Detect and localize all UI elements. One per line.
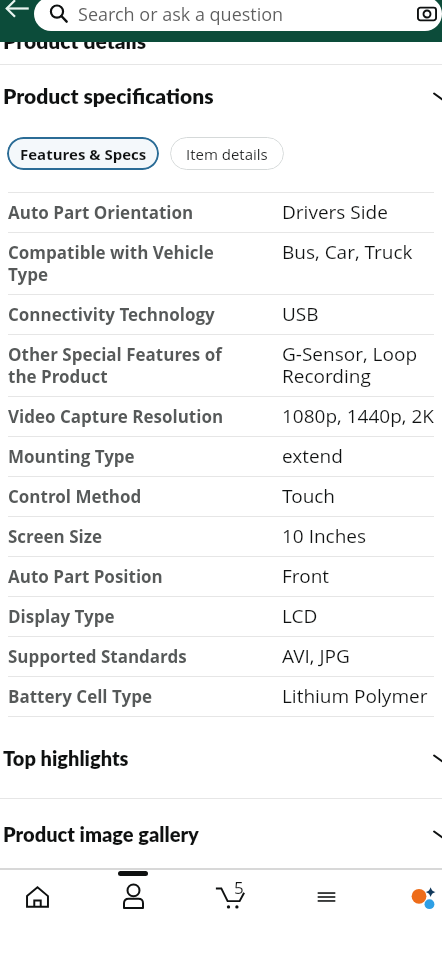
- staticText: Compatible with Vehicle Type: [8, 241, 238, 286]
- staticText: Bus, Car, Truck: [282, 239, 434, 265]
- staticText: Drivers Side: [282, 199, 434, 225]
- button[interactable]: Menu: [311, 870, 341, 960]
- button[interactable]: Rufus assistant: [407, 870, 437, 960]
- staticText: Battery Cell Type: [8, 685, 238, 708]
- staticText: Other Special Features of the Product: [8, 343, 238, 388]
- staticText: Screen Size: [8, 525, 238, 548]
- staticText: Search or ask a question: [78, 2, 284, 27]
- staticText: Product specifications: [3, 83, 214, 108]
- staticText: Lithium Polymer: [282, 683, 434, 709]
- button[interactable]: Product image gallery: [0, 799, 442, 868]
- staticText: Front: [282, 563, 434, 589]
- staticText: 5: [234, 876, 244, 899]
- staticText: 10 Inches: [282, 523, 434, 549]
- button[interactable]: Cart, 5 items: [215, 870, 245, 960]
- staticText: Connectivity Technology: [8, 303, 238, 326]
- staticText: Mounting Type: [8, 445, 238, 468]
- staticText: Control Method: [8, 485, 238, 508]
- staticText: Display Type: [8, 605, 238, 628]
- button[interactable]: Your account: [118, 870, 148, 960]
- staticText: Item details: [186, 144, 268, 164]
- button[interactable]: Search by camera: [412, 0, 442, 29]
- staticText: Video Capture Resolution: [8, 405, 238, 428]
- staticText: Auto Part Position: [8, 565, 238, 588]
- staticText: extend: [282, 443, 434, 469]
- button[interactable]: Back: [0, 0, 34, 25]
- staticText: 1080p, 1440p, 2K: [282, 403, 434, 429]
- button[interactable]: Search or ask a question: [34, 0, 442, 31]
- button[interactable]: Item details: [170, 137, 284, 170]
- staticText: Product image gallery: [3, 822, 199, 846]
- staticText: G-Sensor, Loop Recording: [282, 341, 434, 389]
- button[interactable]: Home: [22, 870, 52, 960]
- staticText: Touch: [282, 483, 434, 509]
- staticText: Top highlights: [3, 746, 129, 770]
- staticText: Product details: [3, 28, 147, 53]
- staticText: LCD: [282, 603, 434, 629]
- staticText: USB: [282, 301, 434, 327]
- button[interactable]: Top highlights: [0, 717, 442, 799]
- staticText: Supported Standards: [8, 645, 238, 668]
- button[interactable]: Features & Specs: [7, 137, 159, 170]
- staticText: Features & Specs: [20, 144, 147, 164]
- staticText: AVI, JPG: [282, 643, 434, 669]
- staticText: Auto Part Orientation: [8, 201, 238, 224]
